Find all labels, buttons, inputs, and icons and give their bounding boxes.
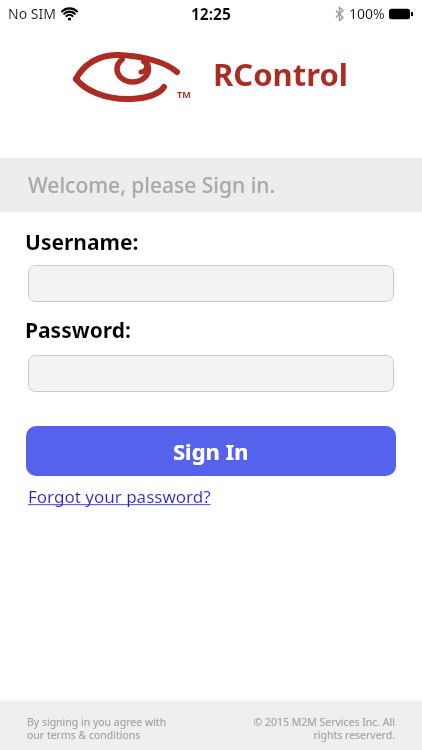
staticText: Username: — [25, 228, 139, 257]
button[interactable]: By signing in you agree with our terms &… — [27, 715, 167, 742]
staticText: Sign In — [173, 436, 249, 466]
button[interactable]: Forgot your password? — [28, 485, 211, 508]
staticText: © 2015 M2M Services Inc. All rights rese… — [253, 715, 395, 742]
button[interactable] — [28, 265, 394, 302]
staticText: TM — [177, 88, 191, 100]
staticText: 100% — [349, 4, 385, 23]
button[interactable] — [28, 355, 394, 392]
staticText: No SIM — [8, 4, 56, 23]
staticText: Welcome, please Sign in. — [28, 171, 276, 200]
staticText: Password: — [25, 316, 131, 345]
button[interactable]: Sign In — [26, 426, 396, 476]
staticText: RControl — [213, 53, 349, 95]
staticText: 12:25 — [191, 3, 231, 24]
